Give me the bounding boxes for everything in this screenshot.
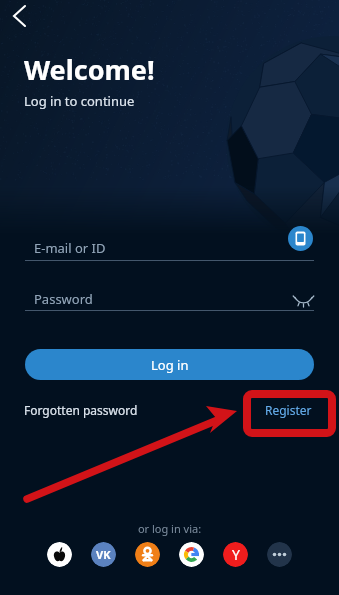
button[interactable]: Google (179, 542, 204, 567)
button[interactable]: Log in (25, 349, 314, 380)
button[interactable]: Show password (291, 290, 316, 310)
button[interactable]: Odnoklassniki (135, 542, 160, 567)
button[interactable]: Log in with phone (288, 226, 313, 251)
button[interactable]: Yandex (223, 542, 248, 567)
staticText: Log in (151, 356, 189, 374)
staticText: E-mail or ID (34, 239, 106, 257)
button[interactable]: Register (265, 402, 312, 418)
button[interactable]: Apple (47, 542, 72, 567)
staticText: Password (34, 290, 93, 308)
button[interactable]: Back (5, 2, 33, 30)
staticText: Forgotten password (24, 402, 138, 418)
staticText: VK (96, 547, 111, 562)
staticText: Log in to continue (24, 92, 135, 110)
button[interactable]: More (267, 542, 292, 567)
button[interactable]: VK (91, 542, 116, 567)
staticText: Register (265, 402, 312, 418)
staticText: or log in via: (0, 521, 339, 536)
staticText: Y (232, 545, 240, 564)
staticText: Welcome! (24, 51, 155, 88)
button[interactable]: Forgotten password (24, 402, 138, 418)
